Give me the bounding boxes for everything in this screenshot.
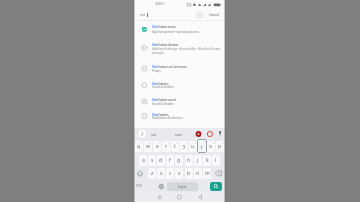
staticText: 9 bbox=[213, 142, 215, 145]
button[interactable]: t bbox=[171, 141, 179, 152]
staticText: Privacy bbox=[152, 69, 161, 73]
button[interactable]: s bbox=[148, 155, 156, 166]
button[interactable] bbox=[134, 39, 225, 56]
staticText: l bbox=[215, 157, 217, 164]
staticText: fication vibration bbox=[158, 42, 179, 47]
staticText: a bbox=[142, 157, 145, 164]
staticText: 1 bbox=[140, 142, 142, 145]
button[interactable] bbox=[135, 181, 148, 192]
staticText: 4 bbox=[168, 142, 170, 145]
button[interactable]: g bbox=[175, 155, 183, 166]
staticText: strength bbox=[152, 51, 164, 55]
staticText: 2 bbox=[149, 142, 151, 145]
staticText: Noti bbox=[152, 42, 158, 47]
button[interactable] bbox=[206, 10, 223, 20]
staticText: Cancel bbox=[209, 12, 220, 16]
staticText: Noti bbox=[152, 24, 158, 29]
button[interactable] bbox=[134, 109, 225, 122]
button[interactable] bbox=[171, 192, 189, 202]
staticText: fications bbox=[158, 112, 169, 117]
button[interactable]: y bbox=[180, 141, 188, 152]
staticText: fication sound bbox=[158, 97, 176, 102]
staticText: q bbox=[137, 143, 141, 150]
button[interactable] bbox=[134, 61, 225, 74]
staticText: g bbox=[177, 157, 181, 164]
staticText: 7 bbox=[195, 142, 197, 145]
button[interactable] bbox=[147, 129, 168, 139]
button[interactable] bbox=[135, 168, 148, 179]
staticText: d bbox=[159, 157, 163, 164]
staticText: 5 bbox=[177, 142, 179, 145]
button[interactable]: u bbox=[189, 141, 197, 152]
staticText: Sound & vibration bbox=[152, 85, 174, 89]
staticText: 22:58:11 bbox=[155, 2, 165, 6]
button[interactable]: j bbox=[194, 155, 202, 166]
staticText: not bbox=[151, 132, 157, 137]
staticText: v bbox=[178, 170, 181, 177]
button[interactable]: English bbox=[167, 182, 198, 191]
button[interactable]: r bbox=[162, 141, 170, 152]
staticText: r bbox=[165, 143, 168, 150]
staticText: Sound & vibration bbox=[152, 102, 174, 106]
button[interactable] bbox=[194, 10, 205, 20]
button[interactable]: f bbox=[166, 155, 174, 166]
button[interactable]: e bbox=[153, 141, 161, 152]
staticText: Notifications & status bar bbox=[152, 116, 183, 120]
staticText: Noti bbox=[152, 97, 158, 102]
button[interactable]: b bbox=[185, 168, 193, 179]
staticText: n bbox=[196, 170, 200, 177]
staticText: m bbox=[205, 170, 210, 177]
staticText: Noti bbox=[152, 81, 158, 86]
staticText: note bbox=[175, 132, 183, 137]
staticText: b bbox=[187, 170, 191, 177]
staticText: ?123 bbox=[136, 184, 142, 188]
staticText: 6 bbox=[186, 142, 188, 145]
button[interactable]: i bbox=[197, 139, 207, 153]
staticText: x bbox=[160, 170, 163, 177]
button[interactable] bbox=[210, 182, 222, 191]
staticText: o bbox=[209, 143, 213, 150]
staticText: e bbox=[156, 143, 159, 150]
staticText: fications on Lock screen bbox=[158, 64, 187, 69]
button[interactable]: x bbox=[157, 168, 165, 179]
button[interactable]: v bbox=[175, 168, 183, 179]
staticText: c bbox=[169, 170, 172, 177]
button[interactable]: l bbox=[212, 155, 220, 166]
staticText: App management • Special app access bbox=[152, 30, 199, 34]
button[interactable] bbox=[134, 94, 225, 107]
button[interactable]: m bbox=[203, 168, 211, 179]
staticText: u bbox=[191, 143, 195, 150]
button[interactable]: z bbox=[148, 168, 156, 179]
button[interactable] bbox=[134, 21, 225, 36]
staticText: s bbox=[151, 157, 154, 164]
staticText: Additional settings • Accessibility • Mo… bbox=[152, 47, 221, 51]
button[interactable] bbox=[148, 181, 156, 192]
button[interactable]: h bbox=[185, 155, 193, 166]
button[interactable] bbox=[157, 181, 165, 192]
button[interactable]: d bbox=[157, 155, 165, 166]
button[interactable] bbox=[192, 192, 210, 202]
staticText: y bbox=[183, 143, 186, 150]
staticText: , bbox=[151, 183, 152, 188]
button[interactable]: p bbox=[216, 141, 224, 152]
button[interactable]: k bbox=[203, 155, 211, 166]
staticText: English bbox=[178, 185, 187, 189]
button[interactable]: o bbox=[207, 141, 215, 152]
staticText: z bbox=[151, 170, 154, 177]
button[interactable] bbox=[151, 192, 169, 202]
staticText: 0 bbox=[222, 142, 224, 145]
staticText: . bbox=[204, 183, 205, 188]
staticText: w bbox=[146, 143, 150, 150]
staticText: Noti bbox=[152, 64, 158, 69]
button[interactable] bbox=[212, 168, 225, 179]
button[interactable]: a bbox=[139, 155, 147, 166]
button[interactable]: q bbox=[135, 141, 143, 152]
button[interactable]: n bbox=[194, 168, 202, 179]
button[interactable]: c bbox=[166, 168, 174, 179]
staticText: 3 bbox=[158, 142, 160, 145]
button[interactable]: w bbox=[144, 141, 152, 152]
button[interactable] bbox=[171, 129, 192, 139]
button[interactable] bbox=[134, 78, 225, 91]
staticText: k bbox=[206, 157, 209, 164]
